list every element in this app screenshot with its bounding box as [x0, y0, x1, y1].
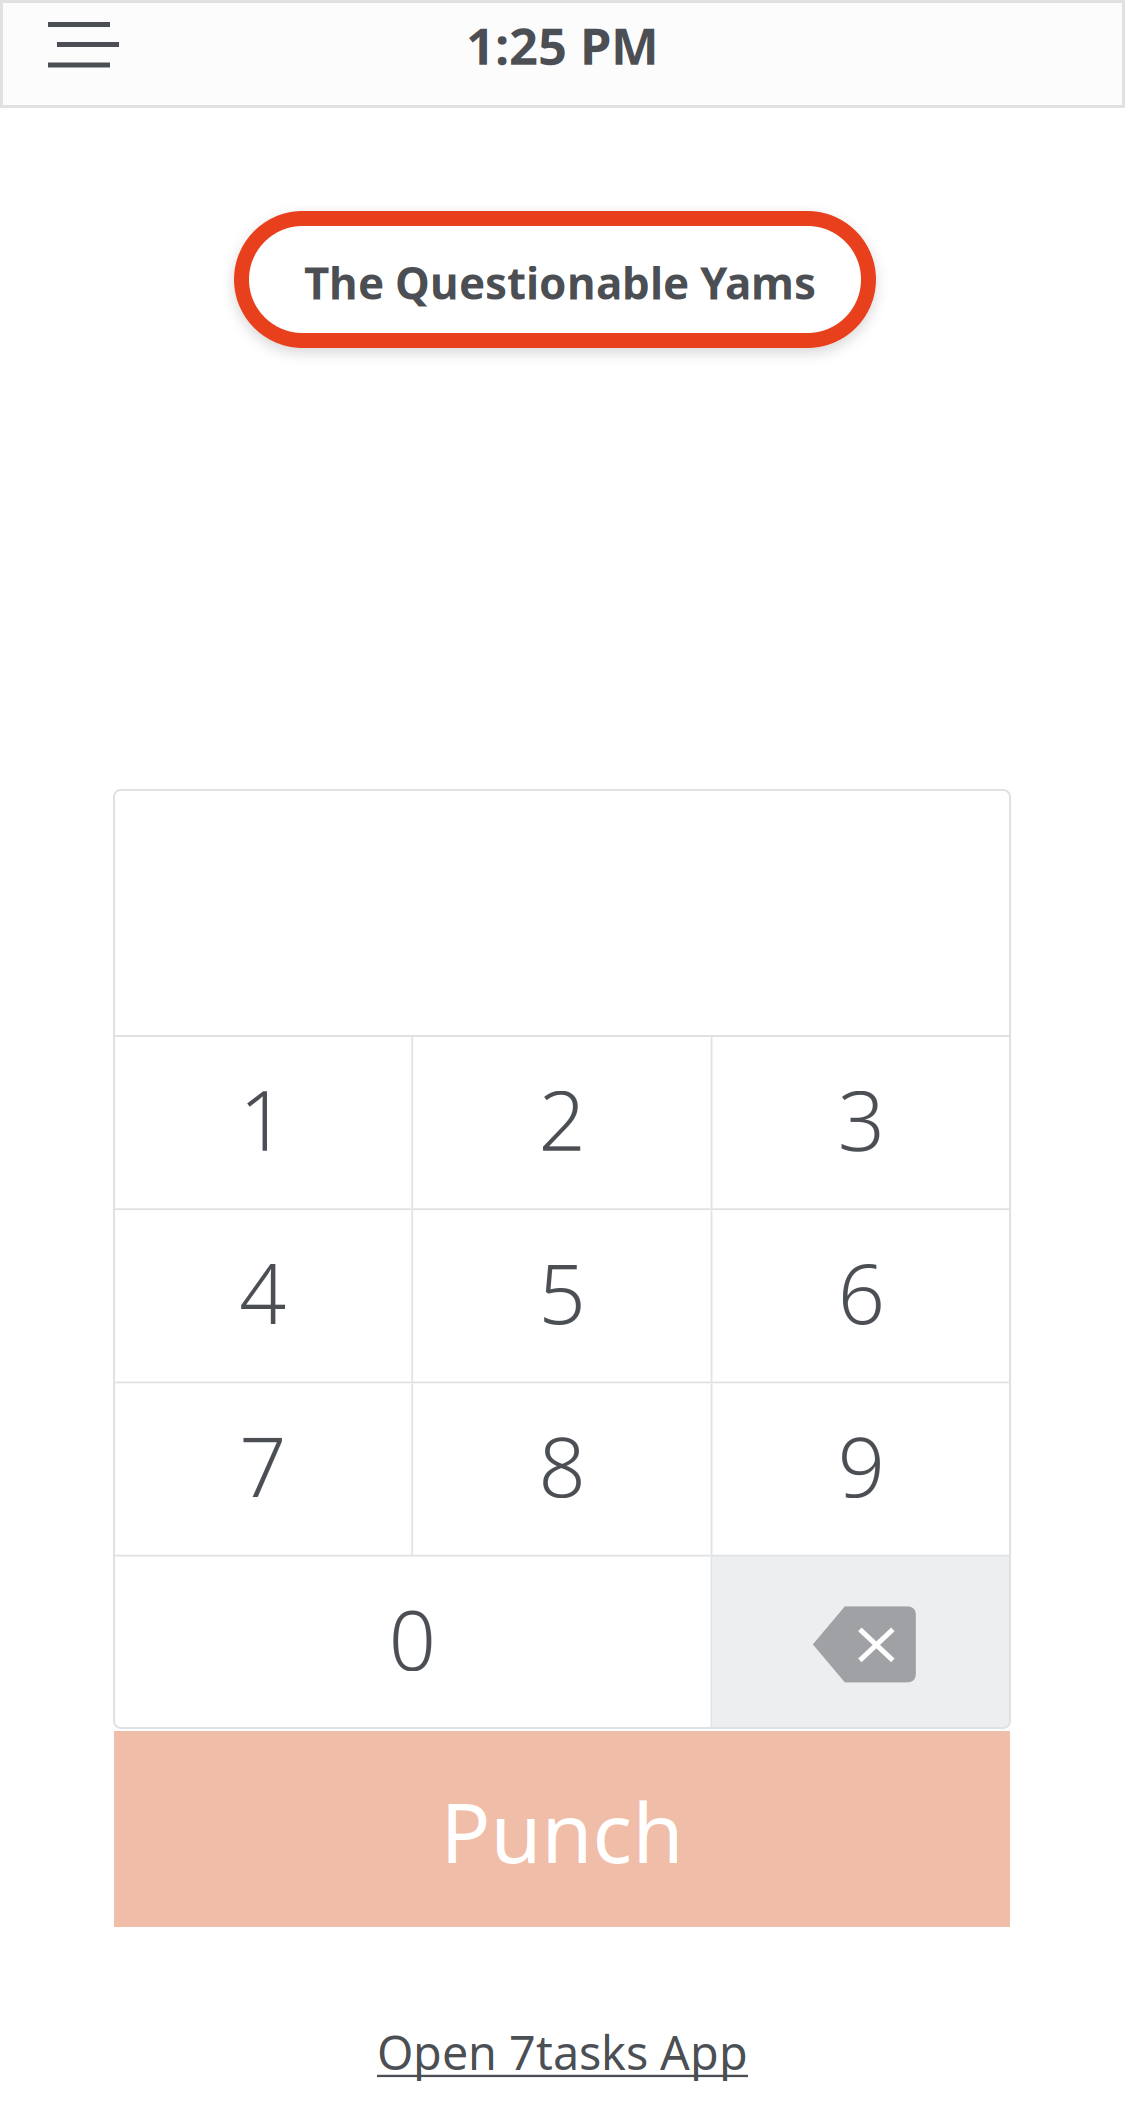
staticText: 2: [538, 1064, 585, 1173]
staticText: 6: [838, 1237, 885, 1347]
button[interactable]: Menu: [0, 1, 168, 107]
staticText: 8: [538, 1410, 585, 1520]
button[interactable]: 1: [114, 1037, 411, 1208]
staticText: 1:25 PM: [466, 11, 659, 79]
staticText: 9: [838, 1410, 885, 1520]
staticText: 0: [389, 1583, 436, 1693]
button[interactable]: Delete: [713, 1557, 1010, 1728]
staticText: 5: [538, 1237, 585, 1347]
button[interactable]: 0: [114, 1557, 711, 1728]
staticText: 4: [239, 1237, 286, 1347]
button[interactable]: The Questionable Yams: [234, 211, 876, 348]
button[interactable]: 3: [713, 1037, 1010, 1208]
staticText: The Questionable Yams: [304, 253, 816, 312]
staticText: Open 7tasks App: [377, 2021, 748, 2083]
button[interactable]: 8: [413, 1383, 711, 1555]
button[interactable]: 7: [114, 1383, 411, 1555]
staticText: 1: [239, 1064, 286, 1173]
button[interactable]: 5: [413, 1210, 711, 1381]
button[interactable]: 9: [713, 1383, 1010, 1555]
button[interactable]: Punch: [114, 1731, 1010, 1927]
button[interactable]: 4: [114, 1210, 411, 1381]
staticText: Punch: [440, 1776, 683, 1886]
button[interactable]: Open 7tasks App: [0, 2012, 1125, 2092]
staticText: 3: [838, 1064, 885, 1173]
staticText: 7: [239, 1410, 286, 1520]
button[interactable]: 2: [413, 1037, 711, 1208]
button[interactable]: 6: [713, 1210, 1010, 1381]
